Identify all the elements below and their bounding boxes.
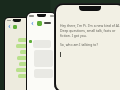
- button[interactable]: Back: [29, 20, 35, 26]
- button[interactable]: Back: [27, 13, 56, 90]
- staticText: Hey there, I'm Pi. I'm a new kind of AI.…: [60, 23, 120, 38]
- button[interactable]: Back: [5, 18, 29, 90]
- staticText: So, who am I talking to?: [60, 42, 98, 47]
- button[interactable]: Back: [7, 24, 12, 29]
- button[interactable]: Hey there, I'm Pi. I'm a new kind of AI.…: [56, 5, 120, 90]
